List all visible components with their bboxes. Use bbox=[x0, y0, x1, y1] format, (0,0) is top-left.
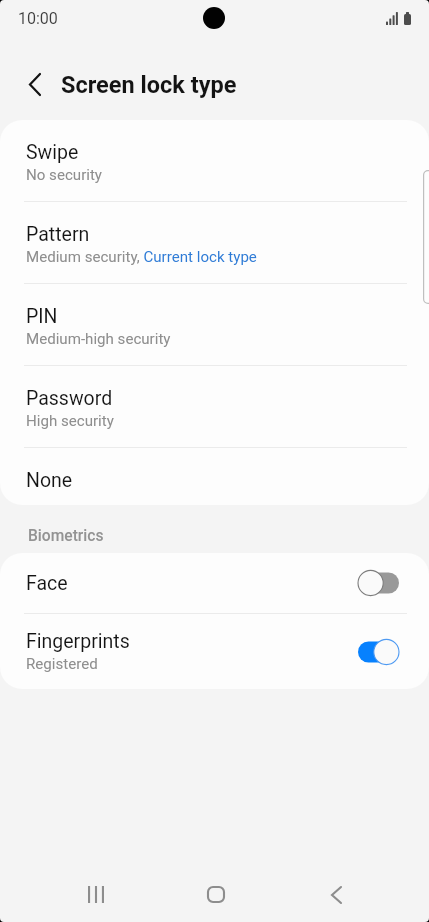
button[interactable]: Fingerprints bbox=[0, 614, 429, 689]
button[interactable]: Password bbox=[0, 366, 429, 447]
staticText: None bbox=[26, 469, 73, 492]
button[interactable]: Face bbox=[0, 553, 429, 613]
staticText: No security bbox=[26, 166, 102, 184]
staticText: Fingerprints bbox=[26, 630, 130, 653]
button[interactable]: Back bbox=[14, 63, 56, 105]
button[interactable]: Pattern bbox=[0, 202, 429, 283]
staticText: 10:00 bbox=[18, 9, 58, 28]
staticText: High security bbox=[26, 412, 114, 430]
button[interactable]: Recent apps bbox=[72, 867, 119, 922]
button[interactable]: None bbox=[0, 448, 429, 505]
staticText: Registered bbox=[26, 655, 98, 673]
staticText: Pattern bbox=[26, 223, 90, 246]
button[interactable]: Swipe bbox=[0, 120, 429, 201]
staticText: PIN bbox=[26, 305, 58, 328]
staticText: Screen lock type bbox=[61, 71, 237, 99]
staticText: Medium-high security bbox=[26, 330, 171, 348]
staticText: Password bbox=[26, 387, 113, 410]
staticText: Swipe bbox=[26, 141, 79, 164]
staticText: Biometrics bbox=[28, 527, 104, 545]
button[interactable]: Home bbox=[192, 867, 239, 922]
button[interactable]: Back bbox=[312, 867, 359, 922]
staticText: Medium security, Current lock type bbox=[26, 248, 257, 266]
staticText: Face bbox=[26, 572, 68, 595]
button[interactable]: PIN bbox=[0, 284, 429, 365]
